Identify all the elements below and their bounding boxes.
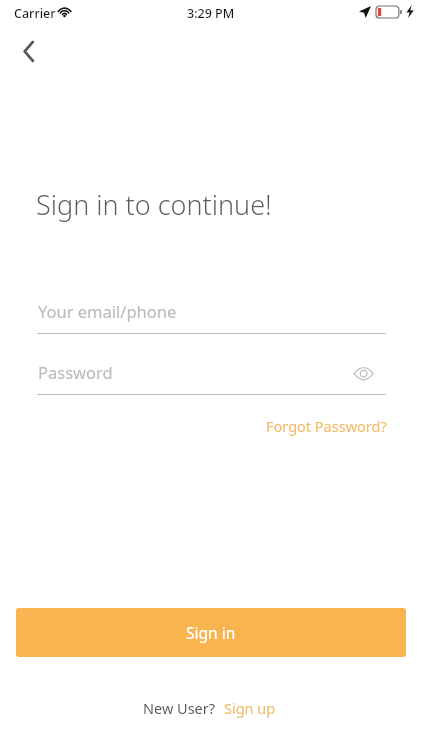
staticText: Carrier — [14, 5, 56, 22]
staticText: Password — [38, 361, 113, 383]
button[interactable]: Your email/phone — [37, 296, 386, 334]
button[interactable]: Forgot Password? — [254, 410, 399, 442]
staticText: 3:29 PM — [187, 5, 235, 22]
button[interactable]: Back — [9, 31, 49, 71]
staticText: Your email/phone — [38, 300, 177, 322]
staticText: Sign in to continue! — [36, 186, 272, 223]
staticText: Sign up — [224, 698, 276, 718]
button[interactable]: Password — [37, 357, 386, 395]
button[interactable]: Sign in — [16, 608, 406, 657]
staticText: Forgot Password? — [266, 416, 387, 436]
staticText: New User? — [143, 698, 216, 718]
button[interactable]: Sign up — [216, 693, 280, 723]
staticText: Sign in — [186, 622, 236, 643]
button[interactable]: Show password — [347, 357, 379, 389]
